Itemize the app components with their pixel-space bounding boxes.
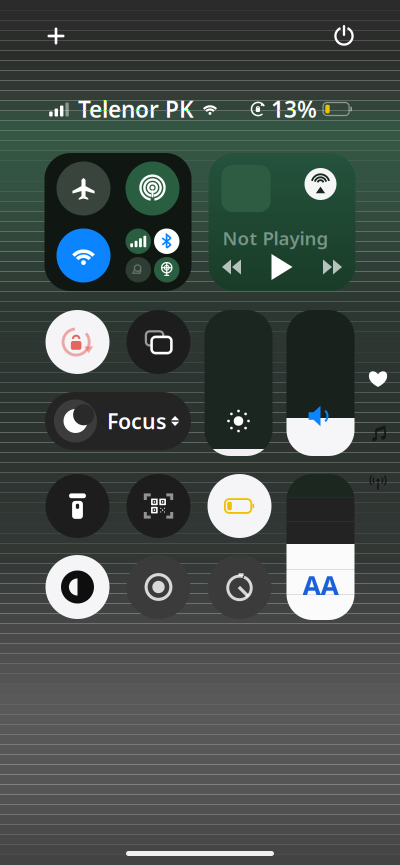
- button[interactable]: Dark Mode: [45, 555, 109, 619]
- button[interactable]: Code Scanner: [126, 474, 190, 538]
- staticText: Focus: [107, 407, 167, 435]
- button[interactable]: Next: [317, 252, 347, 282]
- button[interactable]: Previous: [216, 252, 246, 282]
- staticText: Not Playing: [222, 226, 328, 250]
- button[interactable]: Play: [267, 252, 297, 282]
- button[interactable]: Add: [38, 18, 74, 54]
- button[interactable]: Flashlight: [45, 474, 109, 538]
- button[interactable]: Power: [326, 18, 362, 54]
- button[interactable]: Hearing: [367, 471, 389, 493]
- button[interactable]: Brightness: [204, 310, 272, 456]
- button[interactable]: Low Power Mode: [207, 474, 271, 538]
- button[interactable]: Health: [367, 368, 389, 390]
- button[interactable]: Music: [368, 422, 390, 444]
- button[interactable]: Cellular Data: [125, 228, 151, 254]
- button[interactable]: AirDrop: [125, 161, 179, 215]
- button[interactable]: AirPlay: [304, 168, 336, 200]
- staticText: 13%: [271, 94, 317, 124]
- button[interactable]: Timer: [207, 555, 271, 619]
- button[interactable]: Wi-Fi: [56, 228, 110, 282]
- button[interactable]: Personal Hotspot: [125, 257, 151, 282]
- button[interactable]: Bluetooth: [154, 228, 179, 254]
- button[interactable]: Airplane Mode: [56, 161, 110, 215]
- button[interactable]: Rotation Lock: [45, 310, 109, 374]
- button[interactable]: Volume: [286, 310, 354, 456]
- button[interactable]: Focus: [45, 392, 191, 450]
- button[interactable]: VPN: [154, 257, 179, 282]
- staticText: AA: [302, 567, 338, 603]
- button[interactable]: Screen Mirroring: [126, 310, 190, 374]
- staticText: Telenor PK: [78, 94, 194, 124]
- button[interactable]: Text Size: [286, 474, 354, 620]
- button[interactable]: Camera: [126, 555, 190, 619]
